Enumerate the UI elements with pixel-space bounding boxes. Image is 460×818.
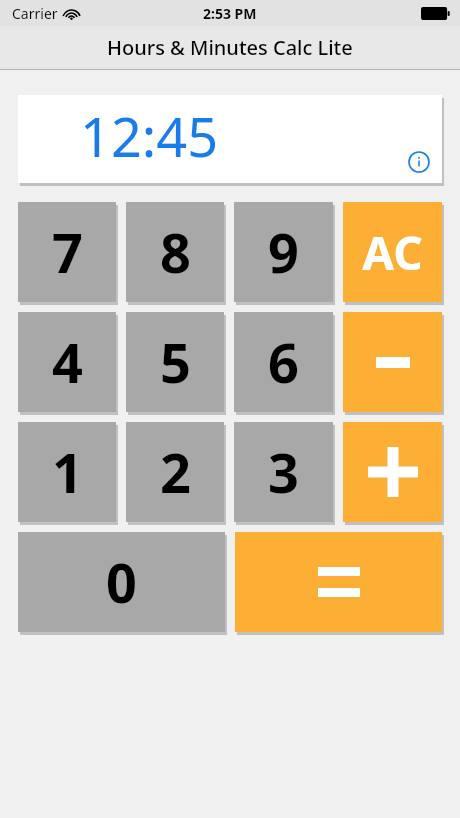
button[interactable]: 1 xyxy=(18,422,116,522)
staticText: Carrier xyxy=(12,4,58,23)
button[interactable]: 2 xyxy=(126,422,224,522)
staticText: 0 xyxy=(106,545,137,619)
button[interactable]: Add xyxy=(343,422,442,522)
staticText: 3 xyxy=(268,435,299,509)
staticText: 2:53 PM xyxy=(203,4,257,23)
button[interactable]: 7 xyxy=(18,202,116,302)
button[interactable]: 5 xyxy=(126,312,224,412)
staticText: 7 xyxy=(52,215,83,289)
button[interactable]: 9 xyxy=(234,202,333,302)
button[interactable]: Subtract xyxy=(343,312,442,412)
button[interactable]: 3 xyxy=(234,422,333,522)
button[interactable]: 0 xyxy=(18,532,225,632)
staticText: 8 xyxy=(160,215,191,289)
button[interactable]: AC xyxy=(343,202,442,302)
staticText: 5 xyxy=(160,325,191,399)
button[interactable]: 12:45 xyxy=(18,95,442,183)
button[interactable]: Equals xyxy=(235,532,442,632)
button[interactable]: Info xyxy=(406,149,432,175)
staticText: Hours & Minutes Calc Lite xyxy=(107,34,353,61)
staticText: AC xyxy=(362,221,423,284)
staticText: 2 xyxy=(160,435,191,509)
staticText: 12:45 xyxy=(80,99,219,173)
staticText: 6 xyxy=(268,325,299,399)
staticText: 1 xyxy=(52,435,83,509)
staticText: 9 xyxy=(268,215,299,289)
staticText: 4 xyxy=(52,325,83,399)
button[interactable]: 6 xyxy=(234,312,333,412)
button[interactable]: 8 xyxy=(126,202,224,302)
button[interactable]: 4 xyxy=(18,312,116,412)
